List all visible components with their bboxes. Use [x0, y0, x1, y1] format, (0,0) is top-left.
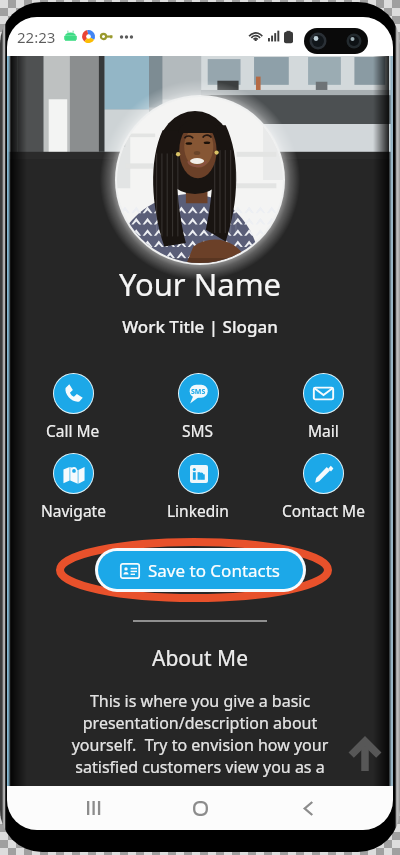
button[interactable]: SMS — [139, 373, 257, 441]
button[interactable]: Mail — [264, 373, 382, 441]
staticText: Mail — [308, 420, 339, 441]
button[interactable]: Save to Contacts — [98, 551, 303, 589]
staticText: Your Name — [7, 263, 393, 305]
staticText: Linkedin — [167, 500, 229, 521]
button[interactable]: Scroll to top — [343, 734, 387, 778]
button[interactable]: Call Me — [14, 373, 132, 441]
staticText: Work Title | Slogan — [7, 315, 393, 338]
button[interactable]: Contact Me — [264, 453, 382, 521]
staticText: SMS — [182, 420, 214, 441]
staticText: Navigate — [41, 500, 106, 521]
button[interactable]: Navigate — [14, 453, 132, 521]
staticText: Save to Contacts — [148, 559, 281, 582]
button[interactable]: Home — [177, 786, 223, 830]
button[interactable]: Linkedin — [139, 453, 257, 521]
staticText: This is where you give a basic presentat… — [7, 690, 393, 778]
button[interactable]: Back — [285, 786, 331, 830]
staticText: About Me — [7, 644, 393, 673]
staticText: 22:23 — [17, 27, 56, 47]
staticText: SMS — [191, 387, 206, 397]
staticText: Call Me — [46, 420, 100, 441]
button[interactable]: Recents — [69, 786, 115, 830]
staticText: Contact Me — [282, 500, 365, 521]
